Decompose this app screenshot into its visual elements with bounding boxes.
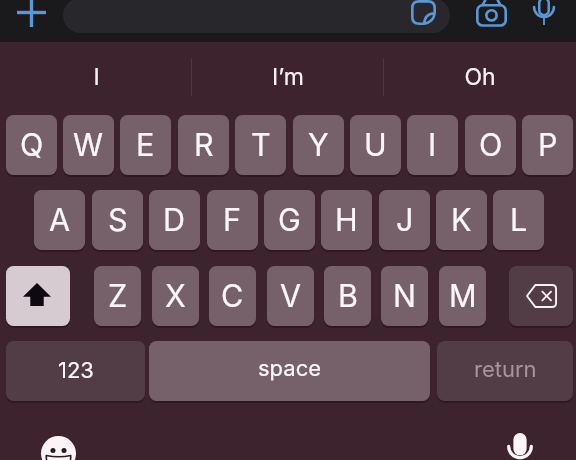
button[interactable]: Camera [474, 0, 508, 30]
staticText: Oh [464, 63, 496, 91]
staticText: C [221, 277, 244, 314]
staticText: G [278, 201, 301, 238]
button[interactable]: I [407, 115, 458, 175]
button[interactable]: W [63, 115, 114, 175]
button[interactable]: T [235, 115, 286, 175]
button[interactable]: space [149, 341, 430, 401]
button[interactable]: 123 [6, 341, 145, 401]
staticText: T [251, 126, 271, 163]
staticText: space [258, 355, 322, 382]
staticText: Q [20, 126, 44, 163]
staticText: K [451, 201, 472, 238]
staticText: return [474, 356, 537, 383]
button[interactable]: L [493, 190, 544, 250]
button[interactable]: G [264, 190, 315, 250]
staticText: V [280, 277, 302, 314]
button[interactable]: F [207, 190, 258, 250]
button[interactable]: E [120, 115, 171, 175]
button[interactable]: N [381, 266, 428, 326]
staticText: N [393, 277, 416, 314]
staticText: P [538, 126, 558, 163]
staticText: A [49, 201, 71, 238]
button[interactable]: Oh [384, 50, 576, 104]
staticText: F [223, 201, 242, 238]
button[interactable]: Stickers [410, 0, 436, 25]
button[interactable]: A [34, 190, 85, 250]
staticText: X [165, 277, 186, 314]
button[interactable]: X [152, 266, 199, 326]
staticText: U [364, 126, 387, 163]
staticText: 123 [58, 357, 94, 384]
staticText: I [428, 126, 437, 163]
button[interactable]: Emoji [41, 436, 76, 460]
staticText: D [163, 201, 186, 238]
staticText: H [335, 201, 358, 238]
button[interactable]: V [267, 266, 314, 326]
staticText: E [136, 126, 155, 163]
button[interactable]: return [437, 341, 573, 401]
button[interactable]: C [209, 266, 256, 326]
button[interactable]: I [0, 50, 192, 104]
staticText: Y [308, 126, 329, 163]
staticText: O [479, 126, 503, 163]
button[interactable]: Voice input [528, 0, 560, 27]
button[interactable]: R [178, 115, 229, 175]
button[interactable]: Shift [6, 266, 70, 326]
button[interactable]: M [439, 266, 486, 326]
button[interactable]: Message field [63, 0, 450, 33]
button[interactable]: K [436, 190, 487, 250]
staticText: Z [108, 277, 128, 314]
staticText: R [194, 126, 214, 163]
button[interactable]: D [149, 190, 200, 250]
button[interactable]: S [92, 190, 143, 250]
button[interactable]: U [350, 115, 401, 175]
staticText: I [93, 63, 100, 91]
staticText: S [108, 201, 128, 238]
staticText: L [510, 201, 528, 238]
staticText: W [73, 126, 104, 163]
button[interactable]: Z [94, 266, 141, 326]
button[interactable]: J [379, 190, 430, 250]
button[interactable]: P [522, 115, 573, 175]
button[interactable]: O [465, 115, 516, 175]
button[interactable]: B [324, 266, 371, 326]
button[interactable]: Dictation [507, 433, 533, 459]
staticText: B [338, 277, 358, 314]
button[interactable]: Backspace [509, 266, 573, 326]
button[interactable]: Q [6, 115, 57, 175]
button[interactable]: Add attachment [13, 0, 49, 30]
button[interactable]: I’m [192, 50, 384, 104]
staticText: J [396, 201, 414, 238]
button[interactable]: Y [293, 115, 344, 175]
button[interactable]: H [321, 190, 372, 250]
staticText: M [449, 277, 477, 314]
staticText: I’m [272, 63, 304, 91]
